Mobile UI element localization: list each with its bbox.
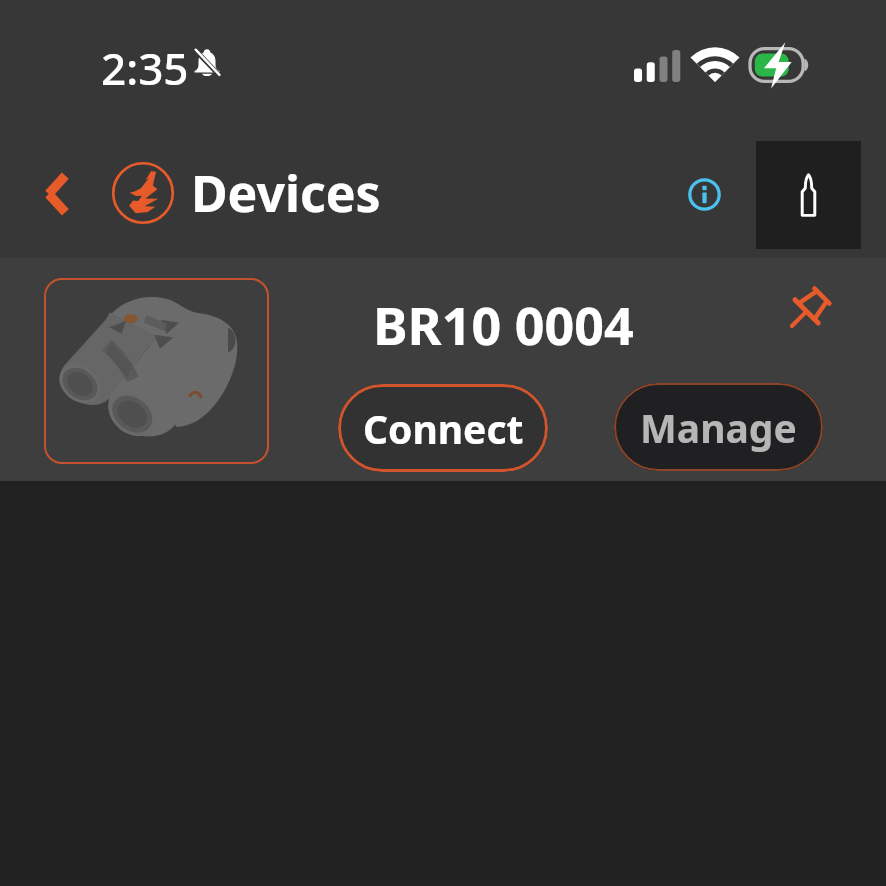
staticText: Manage xyxy=(640,401,797,454)
button[interactable]: Device image xyxy=(44,278,269,464)
staticText: BR10 0004 xyxy=(373,289,634,360)
staticText: Devices xyxy=(191,159,381,227)
button[interactable]: Back xyxy=(28,152,86,236)
staticText: Connect xyxy=(363,402,524,455)
button[interactable]: Pin device xyxy=(778,280,840,342)
staticText: 2:35 xyxy=(101,38,189,98)
button[interactable]: Ammunition xyxy=(756,141,861,249)
button[interactable]: Info xyxy=(670,160,738,228)
button[interactable]: Manage xyxy=(614,383,823,471)
button[interactable]: Connect xyxy=(338,384,548,472)
